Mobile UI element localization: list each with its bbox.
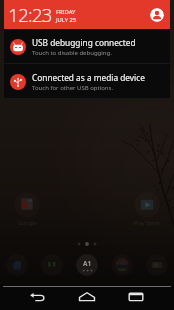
button[interactable]: Chrome <box>111 254 133 276</box>
button[interactable]: Phone <box>6 254 28 276</box>
staticText: Google <box>18 219 37 226</box>
button[interactable]: Camera <box>146 254 168 276</box>
button[interactable]: Play Store <box>132 192 162 226</box>
staticText: A1 <box>83 259 92 268</box>
button[interactable]: Messaging <box>41 254 63 276</box>
staticText: Touch to disable debugging. <box>32 49 112 57</box>
staticText: USB debugging connected <box>32 37 136 48</box>
button[interactable]: Apps <box>76 254 98 276</box>
staticText: JULY 25 <box>56 16 77 24</box>
staticText: Touch for other USB options. <box>32 84 114 92</box>
staticText: 12:23 <box>8 2 52 28</box>
button[interactable]: Recent apps <box>125 287 147 309</box>
staticText: Play Store <box>134 219 160 226</box>
button[interactable]: Google <box>12 192 42 226</box>
button[interactable]: Home <box>76 287 98 309</box>
staticText: Connected as a media device <box>32 72 145 83</box>
button[interactable]: Account <box>150 8 164 22</box>
button[interactable]: Connected as a media device <box>4 64 170 99</box>
button[interactable]: USB debugging connected <box>4 29 170 64</box>
button[interactable]: Back <box>27 287 49 309</box>
staticText: FRIDAY <box>56 8 76 16</box>
